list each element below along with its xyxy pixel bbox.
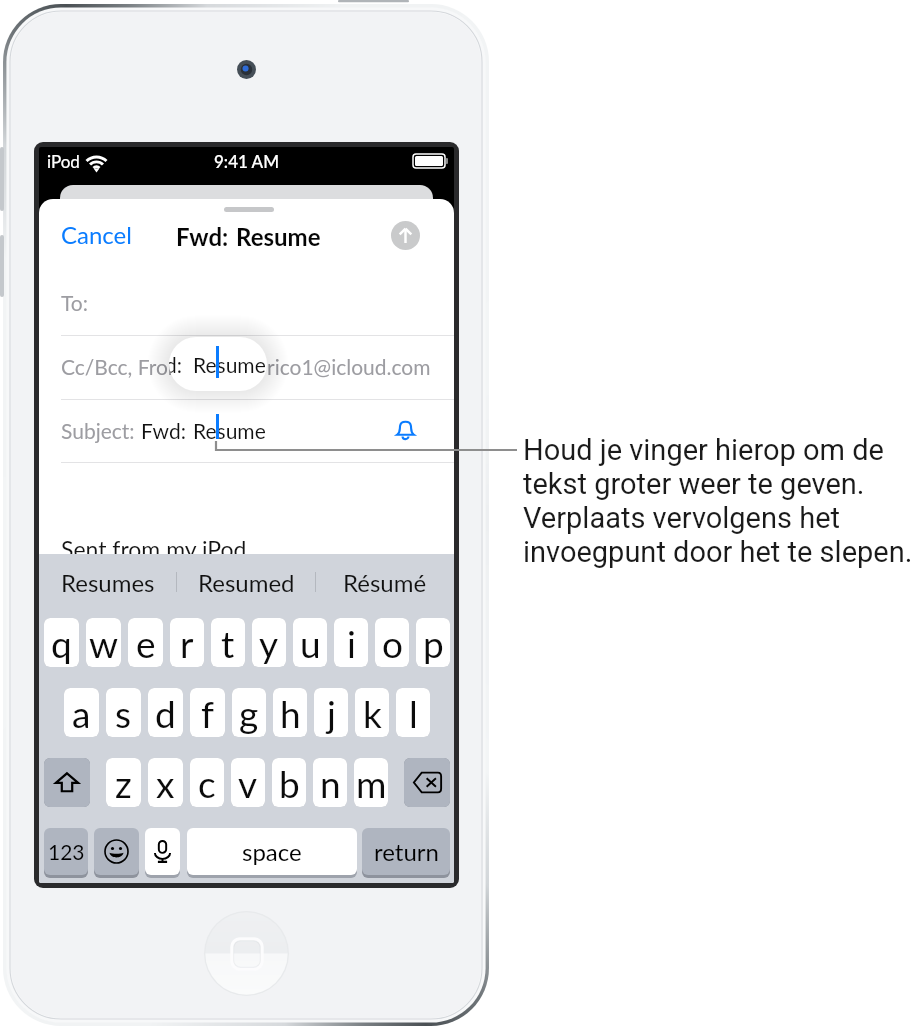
staticText: Fwd:	[176, 222, 229, 251]
staticText: t	[221, 621, 235, 665]
button[interactable]: r	[170, 618, 204, 667]
staticText: w	[89, 621, 119, 665]
staticText: d:	[169, 352, 183, 377]
button[interactable]: 123	[44, 828, 88, 875]
staticText: r	[180, 621, 194, 665]
staticText: Resumes	[61, 568, 155, 597]
staticText: p	[423, 621, 444, 665]
button[interactable]: Resumed	[177, 560, 315, 604]
staticText: u	[300, 621, 321, 665]
button[interactable]: z	[106, 758, 141, 807]
staticText: Fwd:	[141, 418, 186, 443]
staticText: Sent from my iPod	[61, 535, 247, 563]
staticText: e	[136, 621, 156, 665]
staticText: rico1@icloud.com	[267, 354, 431, 379]
button[interactable]: x	[148, 758, 183, 807]
staticText: Resume	[193, 418, 266, 443]
button[interactable]: w	[86, 618, 121, 667]
button[interactable]: e	[128, 618, 163, 667]
button[interactable]: o	[375, 618, 409, 667]
button[interactable]: u	[293, 618, 327, 667]
staticText: a	[72, 691, 91, 735]
button[interactable]: y	[252, 618, 286, 667]
button[interactable]: Emoji	[94, 828, 139, 875]
button[interactable]: l	[396, 688, 430, 737]
button[interactable]: a	[64, 688, 99, 737]
staticText: 9:41 AM	[214, 151, 280, 171]
button[interactable]: m	[354, 758, 388, 807]
staticText: k	[363, 691, 382, 735]
button[interactable]: s	[106, 688, 141, 737]
staticText: l	[409, 691, 418, 735]
button[interactable]: Delete	[404, 758, 450, 807]
staticText: Cancel	[61, 220, 132, 249]
staticText: j	[327, 691, 336, 735]
staticText: z	[115, 761, 132, 805]
button[interactable]: j	[314, 688, 348, 737]
staticText: iPod	[47, 151, 80, 171]
staticText: Subject:	[61, 418, 135, 443]
staticText: b	[279, 761, 300, 805]
button[interactable]: g	[232, 688, 266, 737]
staticText: v	[238, 761, 258, 805]
staticText: To:	[61, 290, 88, 315]
staticText: i	[347, 621, 356, 665]
staticText: g	[239, 691, 259, 735]
button[interactable]: p	[416, 618, 450, 667]
button[interactable]: Cancel	[50, 214, 143, 255]
staticText: 123	[48, 839, 85, 864]
button[interactable]: h	[273, 688, 307, 737]
button[interactable]: To:	[39, 286, 454, 318]
button[interactable]: d	[148, 688, 183, 737]
staticText: Houd je vinger hierop om de tekst groter…	[523, 433, 913, 569]
staticText: s	[115, 691, 132, 735]
button[interactable]: space	[187, 828, 357, 875]
button[interactable]: c	[190, 758, 224, 807]
staticText: return	[374, 837, 439, 866]
staticText: o	[382, 621, 403, 665]
staticText: y	[259, 621, 279, 665]
staticText: space	[242, 837, 302, 866]
button[interactable]: v	[231, 758, 265, 807]
button[interactable]: Cc/Bcc, From:	[39, 350, 454, 382]
staticText: q	[51, 621, 72, 665]
staticText: Résumé	[343, 568, 427, 597]
button[interactable]: return	[362, 828, 450, 875]
staticText: d	[155, 691, 176, 735]
button[interactable]: Send	[391, 221, 420, 250]
staticText: f	[201, 691, 214, 735]
staticText: Resume	[193, 352, 266, 377]
button[interactable]: f	[190, 688, 225, 737]
button[interactable]: Shift	[44, 758, 90, 807]
staticText: c	[198, 761, 216, 805]
button[interactable]: Remind me	[395, 417, 416, 441]
button[interactable]: b	[272, 758, 306, 807]
staticText: h	[280, 691, 301, 735]
button[interactable]: Dictate	[145, 828, 180, 875]
staticText: n	[320, 761, 341, 805]
button[interactable]: Subject:	[39, 414, 454, 446]
staticText: Cc/Bcc, From:	[61, 354, 191, 379]
staticText: x	[156, 761, 175, 805]
button[interactable]: i	[334, 618, 368, 667]
button[interactable]: k	[355, 688, 389, 737]
staticText: Resume	[236, 222, 321, 251]
button[interactable]: q	[44, 618, 79, 667]
staticText: m	[356, 761, 387, 805]
button[interactable]: n	[313, 758, 347, 807]
button[interactable]: t	[211, 618, 245, 667]
button[interactable]: Résumé	[316, 560, 454, 604]
button[interactable]: Resumes	[39, 560, 176, 604]
staticText: Resumed	[198, 568, 295, 597]
